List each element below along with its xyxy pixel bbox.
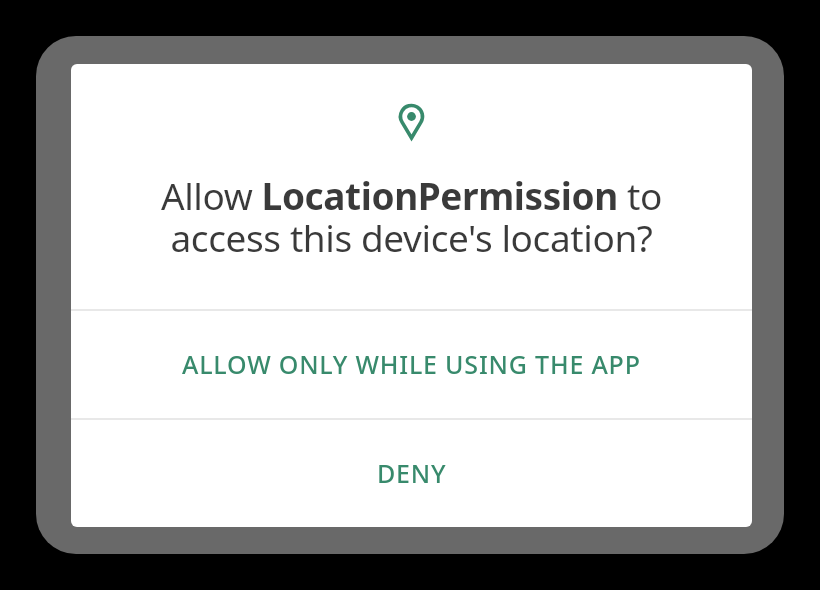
button[interactable]: DENY xyxy=(71,418,752,527)
staticText: ALLOW ONLY WHILE USING THE APP xyxy=(182,347,641,381)
staticText: Allow LocationPermission to access this … xyxy=(71,170,752,263)
button[interactable]: ALLOW ONLY WHILE USING THE APP xyxy=(71,309,752,418)
staticText: DENY xyxy=(377,456,447,490)
